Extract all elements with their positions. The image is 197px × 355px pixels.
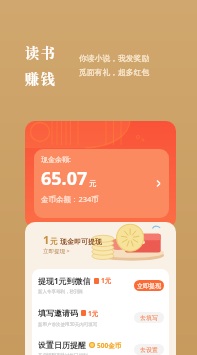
button[interactable]: 提现1元到微信 [38, 269, 164, 301]
button[interactable]: 填写邀请码 [38, 301, 164, 333]
staticText: 读书 [25, 42, 57, 62]
button[interactable]: 去设置 [134, 344, 164, 355]
staticText: 赚钱 [25, 68, 57, 88]
staticText: 1元 [101, 276, 112, 285]
staticText: 65.07 [41, 166, 88, 191]
staticText: 元 [89, 179, 97, 188]
button[interactable]: 去填写 [134, 312, 164, 323]
button[interactable]: 立即提现 > [43, 247, 70, 255]
staticText: 元 [50, 237, 58, 246]
staticText: 1元 [88, 309, 99, 318]
staticText: 觅面有礼，超多红包 [79, 67, 150, 77]
staticText: 立即提现 [137, 282, 161, 290]
other: 查看明细 [156, 179, 161, 188]
staticText: 设置日历提醒 [38, 340, 86, 350]
staticText: 金币余额：234币 [41, 194, 99, 204]
button[interactable]: 现金余额: [34, 149, 169, 218]
staticText: 500金币 [97, 341, 122, 350]
staticText: 去设置 [140, 346, 158, 354]
staticText: 开启提醒不错过每日福利 [38, 353, 88, 355]
staticText: 你读小说，我发奖励 [79, 53, 150, 63]
button[interactable]: 设置日历提醒 [38, 333, 164, 355]
staticText: 新用户首次使用30天内可填写 [38, 321, 98, 327]
staticText: 1 [43, 232, 50, 247]
staticText: 提现1元到微信 [38, 275, 91, 286]
staticText: 填写邀请码 [38, 308, 78, 318]
staticText: 新人专享福利，秒到账 [38, 289, 83, 295]
staticText: 现金余额: [41, 155, 71, 165]
staticText: 现金即可提现 [60, 237, 102, 246]
button[interactable]: 立即提现 [134, 280, 164, 291]
staticText: 去填写 [140, 314, 158, 322]
staticText: 立即提现 > [43, 247, 70, 255]
